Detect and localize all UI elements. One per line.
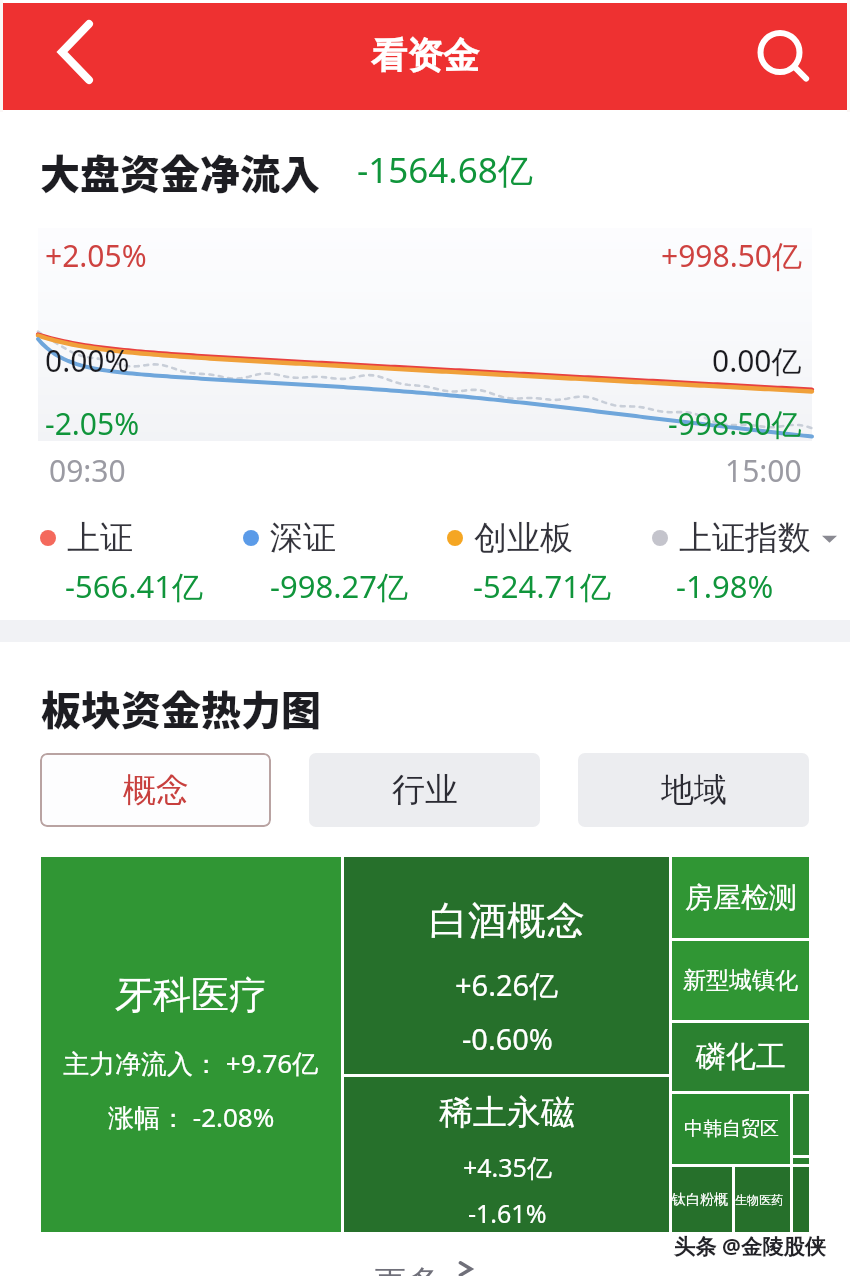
- staticText: 白酒概念: [429, 896, 585, 945]
- button[interactable]: Back: [46, 3, 106, 110]
- staticText: +6.26亿: [455, 965, 559, 1005]
- staticText: 生物医药区: [735, 1192, 790, 1207]
- button[interactable]: 上证指数: [652, 517, 837, 559]
- button[interactable]: 钛白粉概念: [672, 1167, 732, 1232]
- button[interactable]: 稀土永磁: [344, 1077, 669, 1232]
- staticText: 房屋检测: [685, 880, 797, 915]
- button[interactable]: 新型城镇化: [672, 941, 809, 1020]
- staticText: 行业: [392, 769, 458, 811]
- staticText: +4.35亿: [463, 1150, 552, 1184]
- staticText: -1.61%: [468, 1196, 547, 1230]
- staticText: 上证: [67, 517, 133, 559]
- staticText: 看资金: [371, 33, 479, 78]
- staticText: 创业板: [474, 517, 573, 559]
- staticText: +998.50亿: [661, 235, 802, 276]
- button[interactable]: 概念: [40, 753, 271, 827]
- staticText: 涨幅： -2.08%: [108, 1099, 275, 1135]
- staticText: 深证: [270, 517, 336, 559]
- staticText: -566.41亿: [65, 565, 203, 607]
- staticText: 主力净流入： +9.76亿: [63, 1045, 319, 1081]
- staticText: -0.60%: [462, 1019, 553, 1058]
- staticText: 新型城镇化: [683, 966, 798, 995]
- staticText: -524.71亿: [473, 565, 611, 607]
- button[interactable]: 更多: [0, 1262, 850, 1276]
- staticText: -1564.68亿: [357, 146, 533, 194]
- button[interactable]: 白酒概念: [344, 857, 669, 1074]
- button[interactable]: 地域: [578, 753, 809, 827]
- staticText: 15:00: [725, 450, 802, 491]
- staticText: -1.98%: [676, 565, 774, 607]
- button[interactable]: 生物医药区: [735, 1167, 790, 1232]
- staticText: 大盘资金净流入: [40, 143, 320, 201]
- button[interactable]: 牙科医疗: [41, 857, 341, 1232]
- staticText: 0.00亿: [712, 340, 802, 381]
- staticText: +2.05%: [45, 235, 147, 276]
- button[interactable]: 中韩自贸区: [672, 1094, 790, 1164]
- staticText: 0.00%: [45, 340, 130, 381]
- button[interactable]: 上证: [40, 517, 133, 559]
- staticText: 钛白粉概念: [672, 1191, 732, 1209]
- staticText: 头条 @金陵股侠: [674, 1232, 826, 1261]
- button[interactable]: 深证: [243, 517, 336, 559]
- staticText: 上证指数: [679, 517, 811, 559]
- staticText: -2.05%: [45, 403, 140, 444]
- staticText: 地域: [661, 769, 727, 811]
- staticText: -998.27亿: [270, 565, 408, 607]
- staticText: 概念: [123, 769, 189, 811]
- staticText: -998.50亿: [668, 403, 802, 444]
- button[interactable]: 创业板: [447, 517, 573, 559]
- staticText: 稀土永磁: [439, 1091, 575, 1134]
- staticText: 更多: [374, 1262, 440, 1276]
- button[interactable]: 磷化工: [672, 1023, 809, 1091]
- staticText: 中韩自贸区: [684, 1117, 779, 1141]
- staticText: 板块资金热力图: [41, 679, 321, 737]
- staticText: 09:30: [49, 450, 126, 491]
- button[interactable]: 行业: [309, 753, 540, 827]
- button[interactable]: 房屋检测: [672, 857, 809, 938]
- staticText: 牙科医疗: [115, 971, 267, 1019]
- button[interactable]: Search: [742, 3, 818, 110]
- staticText: 磷化工: [696, 1038, 786, 1076]
